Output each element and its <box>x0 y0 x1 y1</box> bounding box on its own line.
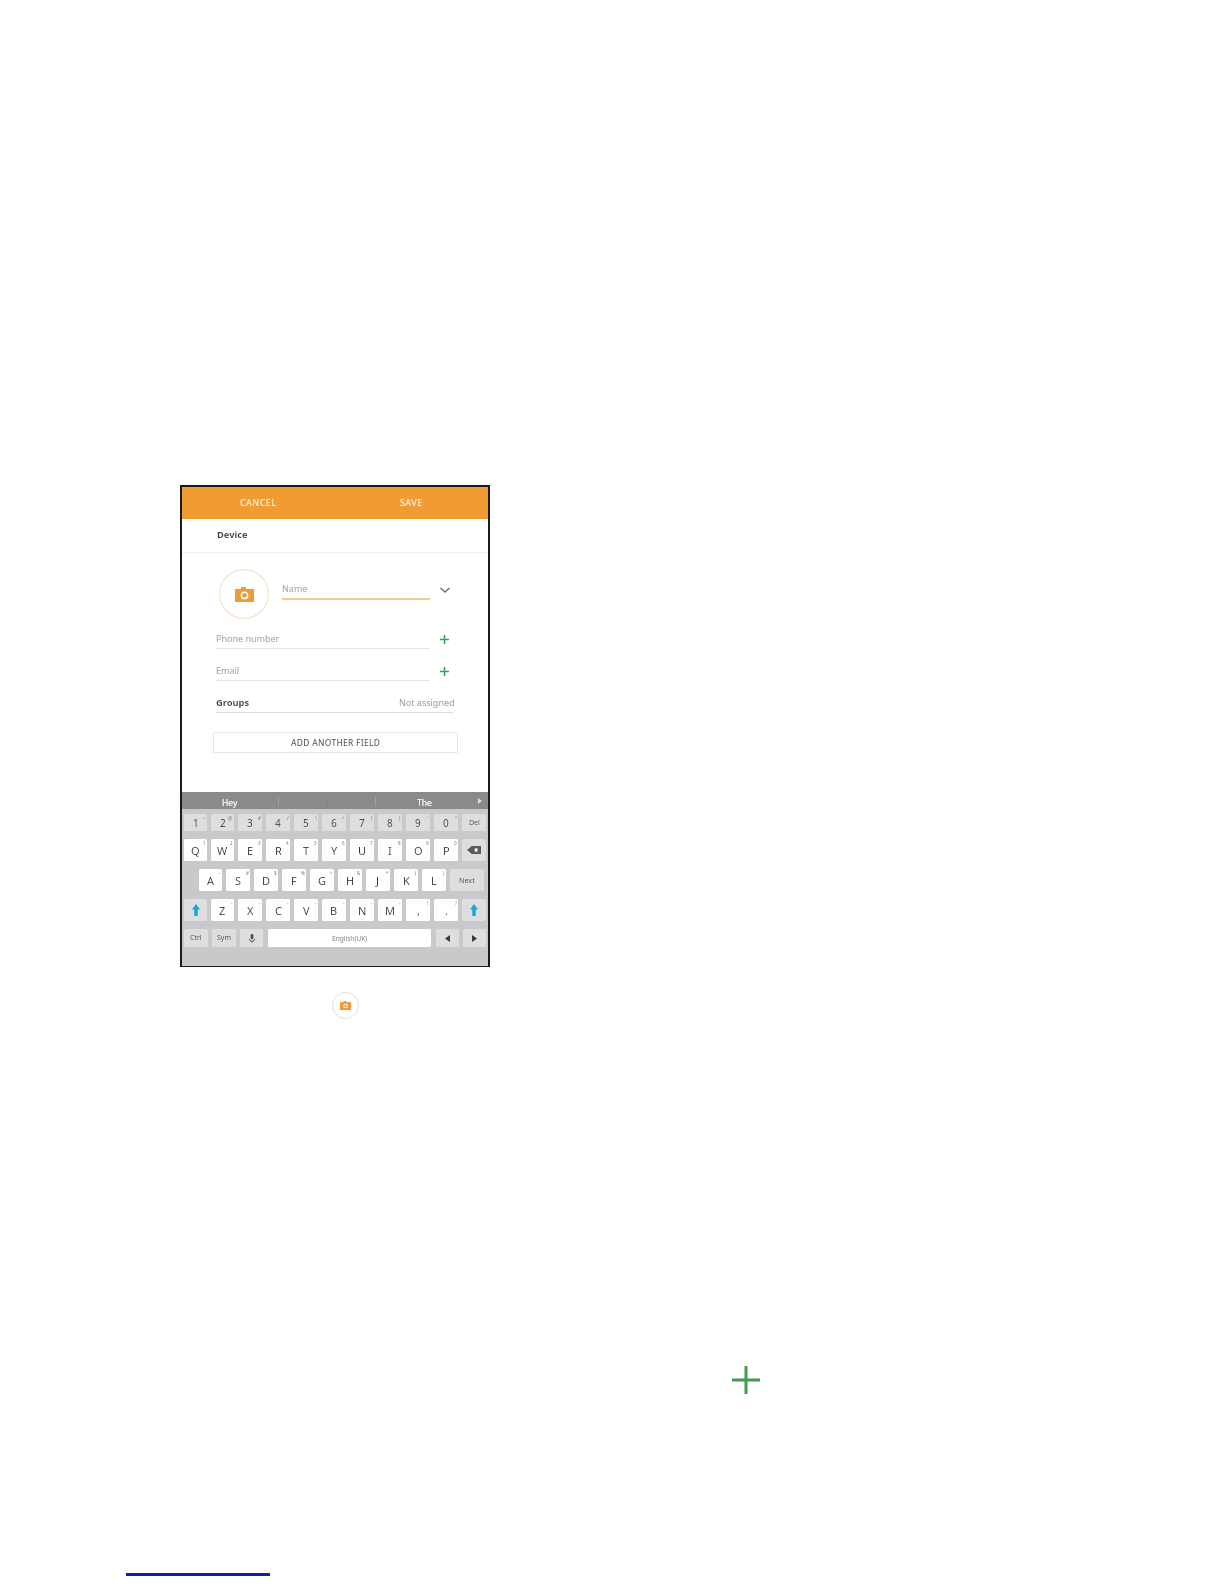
button[interactable]: T <box>294 839 318 861</box>
staticText: B <box>330 903 338 918</box>
button[interactable]: Y <box>322 839 346 861</box>
staticText: 3 <box>247 816 253 830</box>
button[interactable]: I <box>279 792 375 809</box>
button[interactable]: J <box>366 869 390 891</box>
button[interactable]: R <box>266 839 290 861</box>
staticText: ) <box>443 870 445 876</box>
button[interactable]: O <box>406 839 430 861</box>
button[interactable]: Email <box>216 664 430 686</box>
staticText: - <box>343 900 345 906</box>
button[interactable]: I <box>378 839 402 861</box>
button[interactable]: Cursor right <box>463 929 486 947</box>
button[interactable]: Voice input <box>240 929 263 947</box>
staticText: ^ <box>342 815 345 821</box>
button[interactable]: Ctrl <box>184 929 208 947</box>
button[interactable]: H <box>338 869 362 891</box>
staticText: Groups <box>216 696 250 709</box>
button[interactable]: K <box>394 869 418 891</box>
button[interactable]: X <box>238 899 262 921</box>
button[interactable]: G <box>310 869 334 891</box>
staticText: 5 <box>303 816 309 830</box>
button[interactable]: Shift <box>462 899 486 921</box>
staticText: Not assigned <box>399 696 455 708</box>
button[interactable]: 1 <box>184 814 207 831</box>
staticText: English(UK) <box>332 934 368 943</box>
button[interactable]: 7 <box>350 814 374 831</box>
staticText: V <box>303 903 310 918</box>
staticText: W <box>217 843 228 858</box>
button[interactable]: Z <box>211 899 234 921</box>
button[interactable]: Backspace <box>462 839 486 861</box>
staticText: J <box>376 873 380 888</box>
staticText: O <box>414 843 423 858</box>
staticText: # <box>246 870 249 876</box>
staticText: - <box>315 900 317 906</box>
staticText: I <box>388 843 392 858</box>
button[interactable]: W <box>211 839 234 861</box>
button[interactable]: Add Email <box>436 663 452 679</box>
button[interactable]: More suggestions <box>472 792 488 809</box>
button[interactable]: B <box>322 899 346 921</box>
staticText: ? <box>455 900 457 906</box>
button[interactable]: Add photo <box>331 991 359 1019</box>
staticText: A <box>207 873 215 888</box>
button[interactable]: SAVE <box>335 487 488 519</box>
staticText: ( <box>371 815 373 821</box>
staticText: 8 <box>387 816 393 830</box>
button[interactable]: Phone number <box>216 632 430 654</box>
button[interactable]: ADD ANOTHER FIELD <box>213 732 458 753</box>
button[interactable]: . <box>434 899 458 921</box>
button[interactable]: Sym <box>212 929 236 947</box>
staticText: 9 <box>415 816 421 830</box>
button[interactable]: 4 <box>266 814 290 831</box>
button[interactable]: English(UK) <box>268 929 431 947</box>
button[interactable]: Add field <box>730 1364 762 1396</box>
staticText: M <box>385 903 395 918</box>
staticText: ADD ANOTHER FIELD <box>291 737 381 748</box>
button[interactable]: U <box>350 839 374 861</box>
button[interactable]: Expand name <box>436 581 454 599</box>
button[interactable]: 2 <box>211 814 234 831</box>
button[interactable]: Next <box>450 869 484 891</box>
button[interactable]: D <box>254 869 278 891</box>
button[interactable]: S <box>226 869 250 891</box>
staticText: 2 <box>230 840 233 846</box>
button[interactable]: L <box>422 869 446 891</box>
button[interactable]: Cursor left <box>436 929 459 947</box>
button[interactable]: A <box>199 869 222 891</box>
staticText: 1 <box>193 816 199 830</box>
button[interactable]: 9 <box>406 814 430 831</box>
button[interactable]: Shift <box>184 899 207 921</box>
staticText: U <box>358 843 367 858</box>
button[interactable]: 0 <box>434 814 458 831</box>
button[interactable]: F <box>282 869 306 891</box>
button[interactable]: , <box>406 899 430 921</box>
staticText: # <box>258 815 261 821</box>
staticText: H <box>346 873 355 888</box>
staticText: G <box>318 873 327 888</box>
staticText: \ <box>315 815 317 821</box>
button[interactable]: E <box>238 839 262 861</box>
button[interactable]: V <box>294 899 318 921</box>
button[interactable]: Del <box>462 814 486 831</box>
staticText: Ctrl <box>190 933 202 943</box>
button[interactable]: N <box>350 899 374 921</box>
button[interactable]: CANCEL <box>182 487 335 519</box>
button[interactable]: Hey <box>182 792 278 809</box>
button[interactable]: P <box>434 839 458 861</box>
button[interactable]: 5 <box>294 814 318 831</box>
button[interactable]: 8 <box>378 814 402 831</box>
button[interactable]: 3 <box>238 814 262 831</box>
button[interactable]: The <box>376 792 472 809</box>
button[interactable]: Add Phone number <box>436 631 452 647</box>
button[interactable]: C <box>266 899 290 921</box>
button[interactable]: Q <box>184 839 207 861</box>
button[interactable]: Add photo <box>219 569 269 619</box>
staticText: * <box>386 870 389 876</box>
button[interactable]: Name <box>282 582 430 606</box>
button[interactable]: M <box>378 899 402 921</box>
button[interactable]: 6 <box>322 814 346 831</box>
button[interactable]: Device <box>182 518 488 551</box>
button[interactable]: Groups <box>216 696 455 718</box>
